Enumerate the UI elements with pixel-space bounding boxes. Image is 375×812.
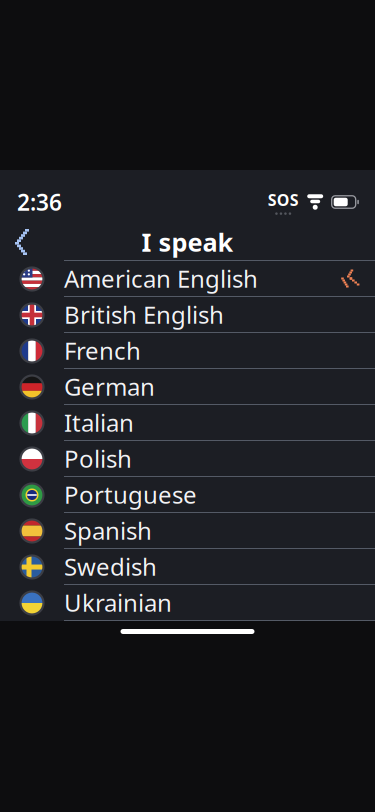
button[interactable]: Back <box>0 224 44 260</box>
button[interactable]: German <box>0 369 375 405</box>
staticText: Swedish <box>64 551 157 582</box>
staticText: American English <box>64 263 258 294</box>
button[interactable]: American English <box>0 261 375 297</box>
button[interactable]: Italian <box>0 405 375 441</box>
staticText: British English <box>64 299 224 330</box>
staticText: Italian <box>64 407 134 438</box>
button[interactable]: French <box>0 333 375 369</box>
button[interactable]: Ukrainian <box>0 585 375 621</box>
button[interactable]: British English <box>0 297 375 333</box>
staticText: SOS <box>268 189 299 210</box>
staticText: Spanish <box>64 515 152 546</box>
button[interactable]: Portuguese <box>0 477 375 513</box>
staticText: Polish <box>64 443 132 474</box>
staticText: Portuguese <box>64 479 197 510</box>
staticText: German <box>64 371 155 402</box>
button[interactable]: Polish <box>0 441 375 477</box>
staticText: 2:36 <box>17 187 62 217</box>
button[interactable]: Spanish <box>0 513 375 549</box>
staticText: Ukrainian <box>64 587 172 618</box>
button[interactable]: Swedish <box>0 549 375 585</box>
staticText: I speak <box>141 225 233 259</box>
staticText: French <box>64 335 141 366</box>
